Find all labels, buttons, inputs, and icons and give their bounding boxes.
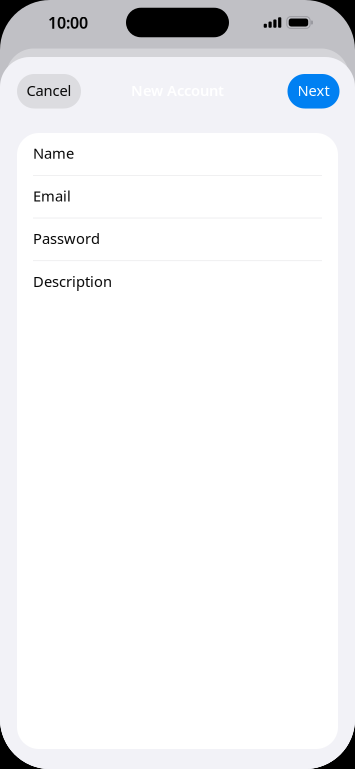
staticText: 10:00 (48, 12, 88, 33)
staticText: Cancel (26, 80, 71, 100)
button[interactable]: Next (287, 74, 339, 108)
staticText: Next (297, 80, 329, 100)
button[interactable]: Description (17, 261, 338, 304)
staticText: Email (33, 186, 71, 205)
button[interactable]: Cancel (17, 74, 81, 108)
staticText: Password (33, 229, 100, 248)
button[interactable]: Email (17, 176, 338, 218)
staticText: New Account (131, 80, 224, 100)
button[interactable]: Name (17, 133, 338, 176)
staticText: Name (33, 143, 74, 163)
staticText: Description (33, 272, 112, 291)
button[interactable]: Password (17, 218, 338, 261)
